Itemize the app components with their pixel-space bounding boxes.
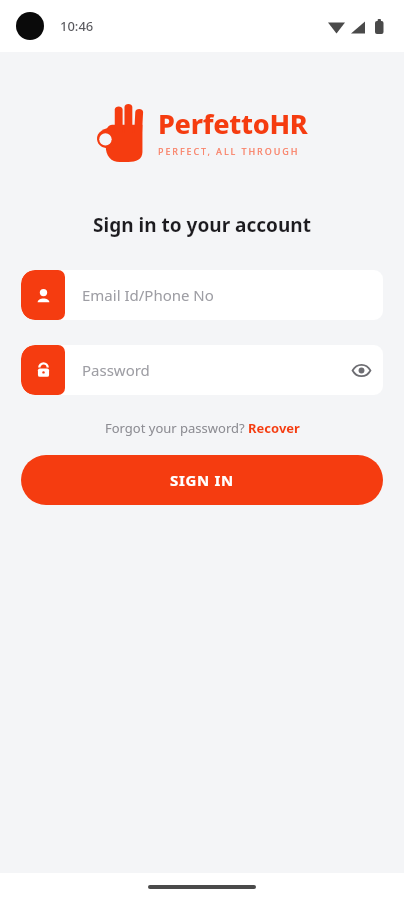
other: Password [21,345,65,395]
staticText: 10:46 [60,17,94,35]
button[interactable]: SIGN IN [21,455,383,505]
staticText: PERFECT, ALL THROUGH [158,145,300,157]
button[interactable]: Account [21,270,383,320]
staticText: PerfettoHR [158,105,308,142]
button[interactable]: Password [21,345,383,395]
staticText: Forgot your password? Recover [105,419,300,437]
other: Account [21,270,65,320]
button[interactable]: Show password [339,348,383,392]
staticText: SIGN IN [170,470,234,490]
staticText: Password [82,360,339,380]
staticText: Sign in to your account [0,212,404,238]
button[interactable]: Forgot your password? Recover [105,419,300,437]
staticText: Email Id/Phone No [82,285,369,305]
